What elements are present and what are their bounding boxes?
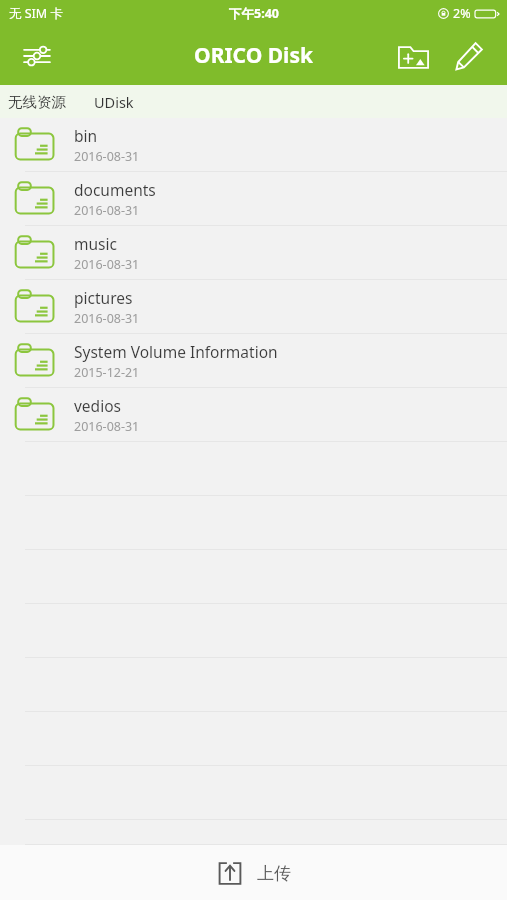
staticText: 下午5:40 <box>229 5 279 22</box>
staticText: 无线资源 <box>8 93 66 111</box>
button[interactable]: vedios <box>0 388 507 442</box>
staticText: 2015-12-21 <box>74 364 140 381</box>
staticText: music <box>74 233 117 254</box>
staticText: 2016-08-31 <box>74 148 140 165</box>
staticText: pictures <box>74 287 133 308</box>
staticText: UDisk <box>94 92 134 112</box>
staticText: ORICO Disk <box>194 41 313 70</box>
staticText: System Volume Information <box>74 341 278 362</box>
staticText: 2016-08-31 <box>74 310 140 327</box>
staticText: 2% <box>453 5 471 22</box>
button[interactable]: pictures <box>0 280 507 334</box>
button[interactable]: documents <box>0 172 507 226</box>
button[interactable]: Edit <box>445 32 493 80</box>
staticText: documents <box>74 179 156 200</box>
staticText: 2016-08-31 <box>74 256 140 273</box>
staticText: vedios <box>74 395 121 416</box>
staticText: 2016-08-31 <box>74 418 140 435</box>
button[interactable]: bin <box>0 118 507 172</box>
button[interactable]: UDisk <box>89 85 139 118</box>
staticText: bin <box>74 125 98 146</box>
button[interactable]: New folder <box>389 32 437 80</box>
button[interactable]: 上传 <box>199 852 309 894</box>
button[interactable]: Settings <box>14 33 60 79</box>
button[interactable]: music <box>0 226 507 280</box>
staticText: 无 SIM 卡 <box>9 5 63 22</box>
button[interactable]: 无线资源 <box>3 85 71 118</box>
staticText: 2016-08-31 <box>74 202 140 219</box>
staticText: 上传 <box>257 863 291 884</box>
button[interactable]: System Volume Information <box>0 334 507 388</box>
